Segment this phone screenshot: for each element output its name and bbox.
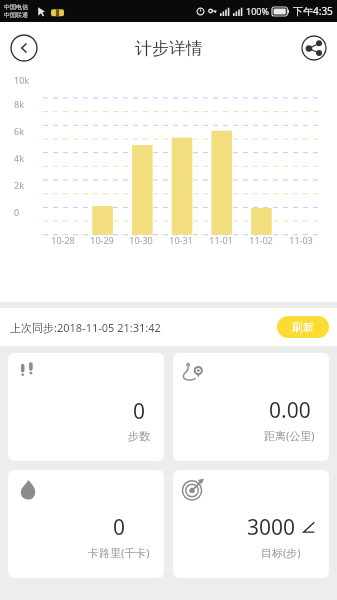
staticText: 11-01 (209, 234, 233, 246)
staticText: 8k (14, 98, 24, 110)
staticText: 10k (14, 74, 30, 86)
staticText: 目标(步) (261, 545, 301, 560)
staticText: 3000 (247, 513, 296, 542)
staticText: 中国电信 (4, 3, 28, 11)
staticText: 刷新 (292, 320, 314, 334)
button[interactable]: Back (10, 34, 38, 62)
staticText: 上次同步:2018-11-05 21:31:42 (10, 320, 161, 335)
button[interactable]: 0 (8, 470, 164, 578)
staticText: 2k (14, 179, 24, 191)
staticText: 下午4:35 (293, 4, 333, 18)
staticText: 10-29 (90, 234, 114, 246)
staticText: 步数 (128, 429, 150, 443)
button[interactable]: 0.00 (173, 353, 329, 461)
staticText: 0.00 (269, 396, 311, 425)
staticText: 卡路里(千卡) (88, 545, 150, 560)
staticText: 0 (113, 513, 126, 542)
staticText: 距离(公里) (264, 428, 315, 443)
staticText: 计步详情 (135, 38, 203, 59)
button[interactable]: 3000 (173, 470, 329, 578)
staticText: 4k (14, 152, 24, 164)
staticText: 0 (133, 397, 146, 426)
staticText: 11-03 (289, 234, 313, 246)
staticText: 中国联通 (4, 11, 28, 19)
staticText: 11-02 (249, 234, 273, 246)
staticText: 6k (14, 125, 24, 137)
button[interactable]: 刷新 (277, 316, 329, 338)
staticText: 10-30 (129, 234, 153, 246)
staticText: 10-31 (169, 234, 193, 246)
button[interactable]: 0 (8, 353, 164, 461)
staticText: 0 (14, 206, 20, 218)
button[interactable]: Share (301, 35, 327, 61)
staticText: 10-28 (51, 234, 75, 246)
staticText: 100% (246, 5, 269, 17)
